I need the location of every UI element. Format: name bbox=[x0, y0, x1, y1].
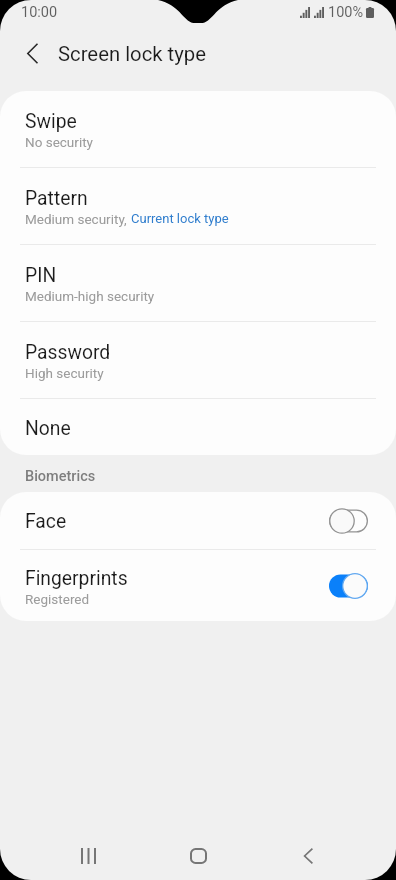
staticText: 100% bbox=[328, 4, 364, 21]
button[interactable]: Swipe bbox=[0, 91, 396, 167]
staticText: Swipe bbox=[25, 110, 77, 133]
button[interactable]: Face bbox=[0, 492, 396, 549]
button[interactable]: Password bbox=[0, 322, 396, 398]
staticText: PIN bbox=[25, 264, 57, 287]
button[interactable]: None bbox=[0, 399, 396, 455]
staticText: Medium-high security bbox=[25, 288, 155, 304]
staticText: Pattern bbox=[25, 187, 88, 210]
staticText: Password bbox=[25, 341, 111, 364]
staticText: None bbox=[25, 417, 71, 440]
staticText: 10:00 bbox=[21, 4, 58, 21]
staticText: Current lock type bbox=[131, 211, 229, 226]
button[interactable]: Home bbox=[168, 830, 228, 880]
button[interactable]: Pattern bbox=[0, 168, 396, 244]
staticText: Face bbox=[25, 510, 67, 533]
button[interactable]: Recent apps bbox=[58, 830, 118, 880]
button[interactable]: PIN bbox=[0, 245, 396, 321]
button[interactable]: Navigate up bbox=[0, 20, 64, 87]
staticText: High security bbox=[25, 365, 104, 381]
staticText: Fingerprints bbox=[25, 567, 128, 590]
button[interactable]: Turn on bbox=[329, 508, 368, 534]
button[interactable]: Back bbox=[278, 830, 338, 880]
button[interactable]: Turn off bbox=[329, 573, 368, 599]
staticText: Registered bbox=[25, 591, 90, 607]
staticText: Medium security, bbox=[25, 211, 131, 227]
staticText: Biometrics bbox=[25, 468, 96, 485]
button[interactable]: Fingerprints bbox=[0, 550, 396, 621]
staticText: No security bbox=[25, 134, 93, 150]
staticText: Screen lock type bbox=[58, 42, 206, 66]
